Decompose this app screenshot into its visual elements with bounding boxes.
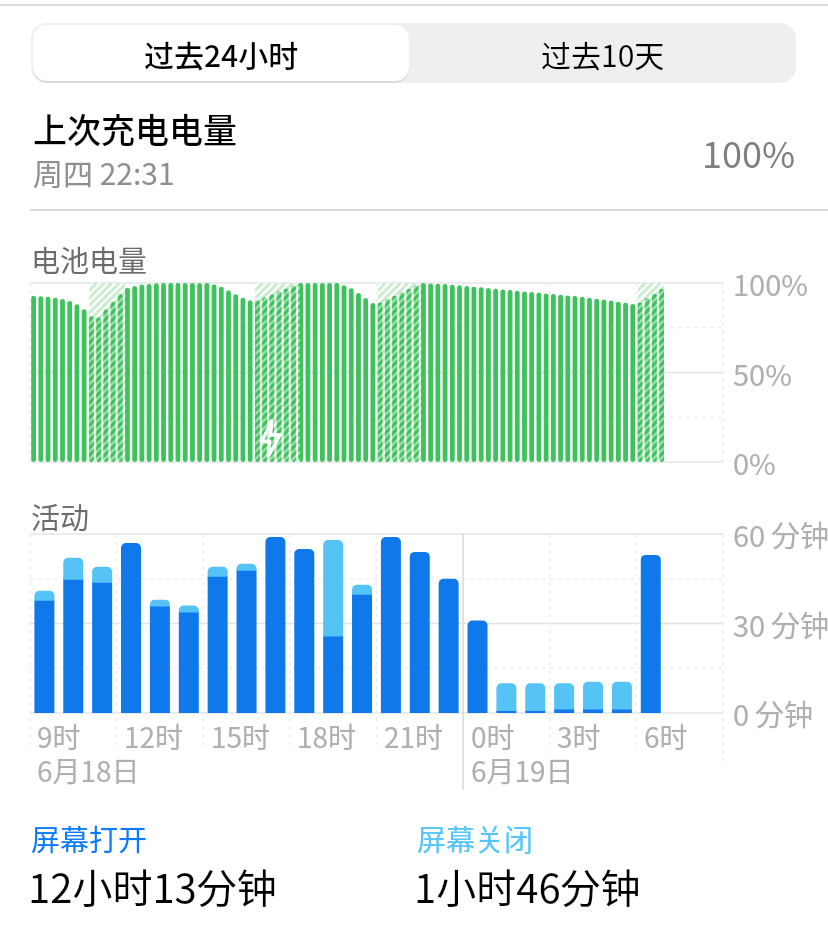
staticText: 电池电量 [31,238,148,280]
staticText: 过去24小时 [144,32,299,75]
staticText: 12小时13分钟 [28,857,277,915]
staticText: 0 分钟 [733,692,813,734]
staticText: 30 分钟 [733,603,828,645]
staticText: 12时 [124,716,184,757]
staticText: 100% [733,262,808,304]
button[interactable]: 过去10天 [409,25,796,81]
staticText: 屏幕打开 [31,817,148,859]
staticText: 100% [702,126,796,178]
staticText: 50% [733,352,792,394]
staticText: 15时 [211,716,271,757]
staticText: 3时 [557,716,601,757]
staticText: 屏幕关闭 [417,817,534,859]
button[interactable]: 过去24小时 [33,25,409,81]
staticText: 21时 [384,716,444,757]
staticText: 6月19日 [471,750,574,791]
button[interactable]: 屏幕关闭 [414,817,774,927]
staticText: 6时 [644,716,688,757]
staticText: 过去10天 [541,32,665,75]
staticText: 6月18日 [37,750,140,791]
staticText: 18时 [297,716,357,757]
staticText: 周四 22:31 [33,150,175,193]
staticText: 60 分钟 [733,513,828,555]
button[interactable]: 屏幕打开 [28,817,388,927]
staticText: 9时 [37,716,81,757]
staticText: 0% [733,441,776,483]
staticText: 上次充电电量 [33,104,237,153]
staticText: 活动 [31,495,90,537]
staticText: 0时 [471,716,515,757]
staticText: 1小时46分钟 [414,857,641,915]
